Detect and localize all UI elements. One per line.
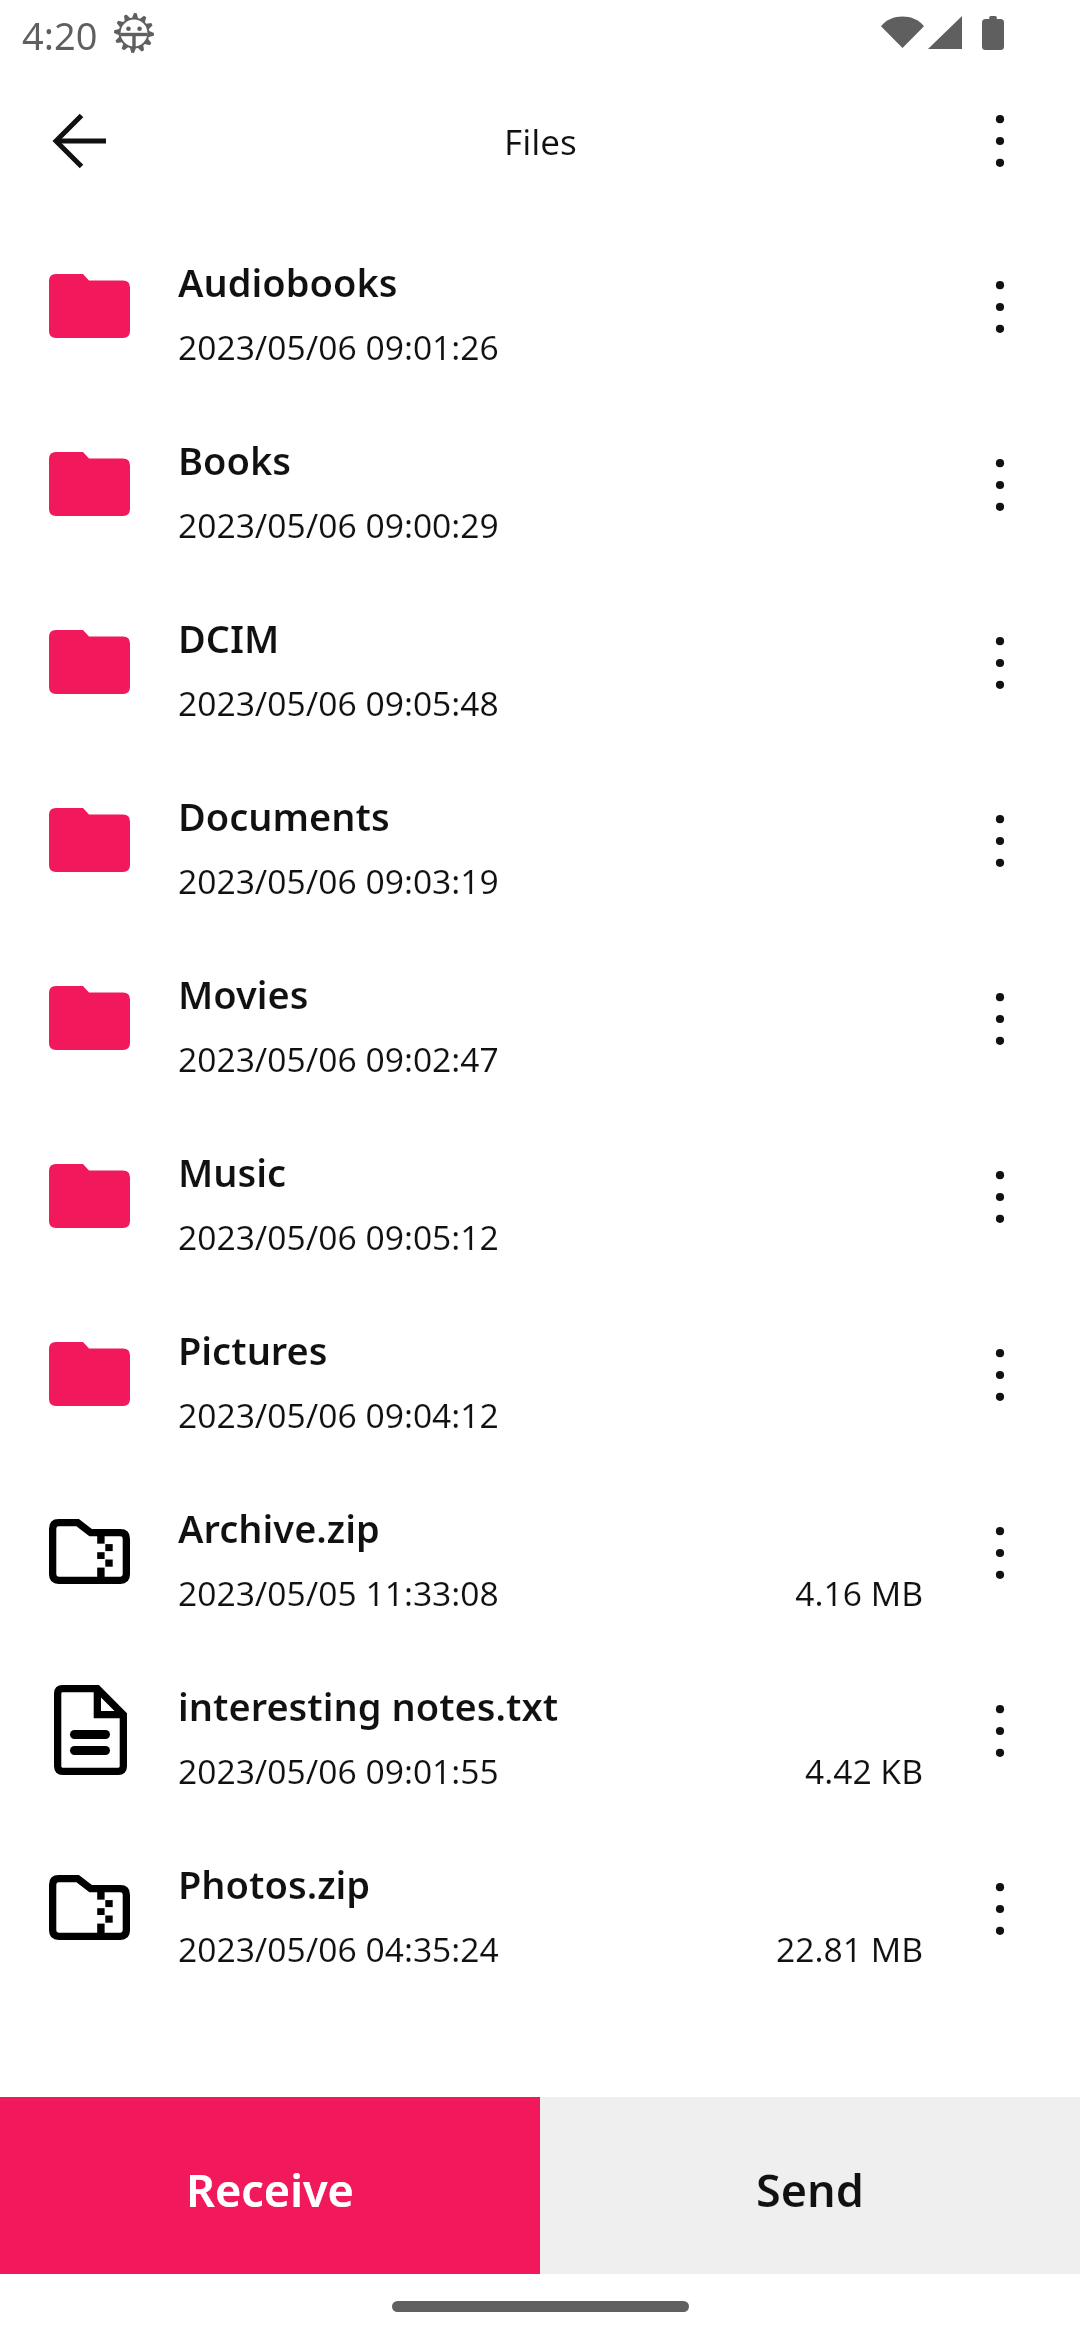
button[interactable]: Send xyxy=(540,2097,1080,2274)
button[interactable]: Item options xyxy=(956,263,1044,351)
button[interactable]: Item options xyxy=(956,797,1044,885)
button[interactable]: Item options xyxy=(956,619,1044,707)
staticText: 2023/05/06 09:05:12 xyxy=(178,1214,499,1260)
staticText: 2023/05/06 09:01:26 xyxy=(178,324,499,370)
staticText: 22.81 MB xyxy=(623,1926,923,1972)
staticText: Movies xyxy=(178,968,309,1020)
staticText: 4.16 MB xyxy=(623,1570,923,1616)
staticText: interesting notes.txt xyxy=(178,1680,559,1732)
button[interactable]: Back xyxy=(35,97,123,185)
staticText: Books xyxy=(178,434,292,486)
staticText: Pictures xyxy=(178,1324,328,1376)
staticText: 2023/05/06 04:35:24 xyxy=(178,1926,499,1972)
button[interactable]: Item options xyxy=(956,1331,1044,1419)
staticText: 4:20 xyxy=(22,9,98,61)
button[interactable]: Item options xyxy=(956,1509,1044,1597)
staticText: Send xyxy=(756,2159,864,2220)
staticText: 4.42 KB xyxy=(623,1748,923,1794)
button[interactable]: Music xyxy=(0,1122,1080,1300)
staticText: Documents xyxy=(178,790,390,842)
button[interactable]: More options xyxy=(956,97,1044,185)
button[interactable]: Item options xyxy=(956,1687,1044,1775)
staticText: Music xyxy=(178,1146,287,1198)
staticText: 2023/05/06 09:02:47 xyxy=(178,1036,499,1082)
button[interactable]: Archive.zip xyxy=(0,1478,1080,1656)
button[interactable]: Item options xyxy=(956,975,1044,1063)
button[interactable]: Item options xyxy=(956,1865,1044,1953)
staticText: 2023/05/06 09:03:19 xyxy=(178,858,499,904)
staticText: Files xyxy=(504,118,577,166)
staticText: 2023/05/06 09:01:55 xyxy=(178,1748,499,1794)
staticText: 2023/05/06 09:05:48 xyxy=(178,680,499,726)
button[interactable]: Audiobooks xyxy=(0,232,1080,410)
button[interactable]: Documents xyxy=(0,766,1080,944)
staticText: Audiobooks xyxy=(178,256,398,308)
staticText: 2023/05/05 11:33:08 xyxy=(178,1570,499,1616)
staticText: 2023/05/06 09:00:29 xyxy=(178,502,499,548)
button[interactable]: Item options xyxy=(956,441,1044,529)
button[interactable]: interesting notes.txt xyxy=(0,1656,1080,1834)
button[interactable]: DCIM xyxy=(0,588,1080,766)
staticText: Archive.zip xyxy=(178,1502,380,1554)
button[interactable]: Pictures xyxy=(0,1300,1080,1478)
button[interactable]: Books xyxy=(0,410,1080,588)
button[interactable]: Photos.zip xyxy=(0,1834,1080,2012)
button[interactable]: Movies xyxy=(0,944,1080,1122)
staticText: DCIM xyxy=(178,612,280,664)
button[interactable]: Item options xyxy=(956,1153,1044,1241)
staticText: Photos.zip xyxy=(178,1858,371,1910)
button[interactable]: Receive xyxy=(0,2097,540,2274)
staticText: Receive xyxy=(186,2159,354,2220)
staticText: 2023/05/06 09:04:12 xyxy=(178,1392,499,1438)
